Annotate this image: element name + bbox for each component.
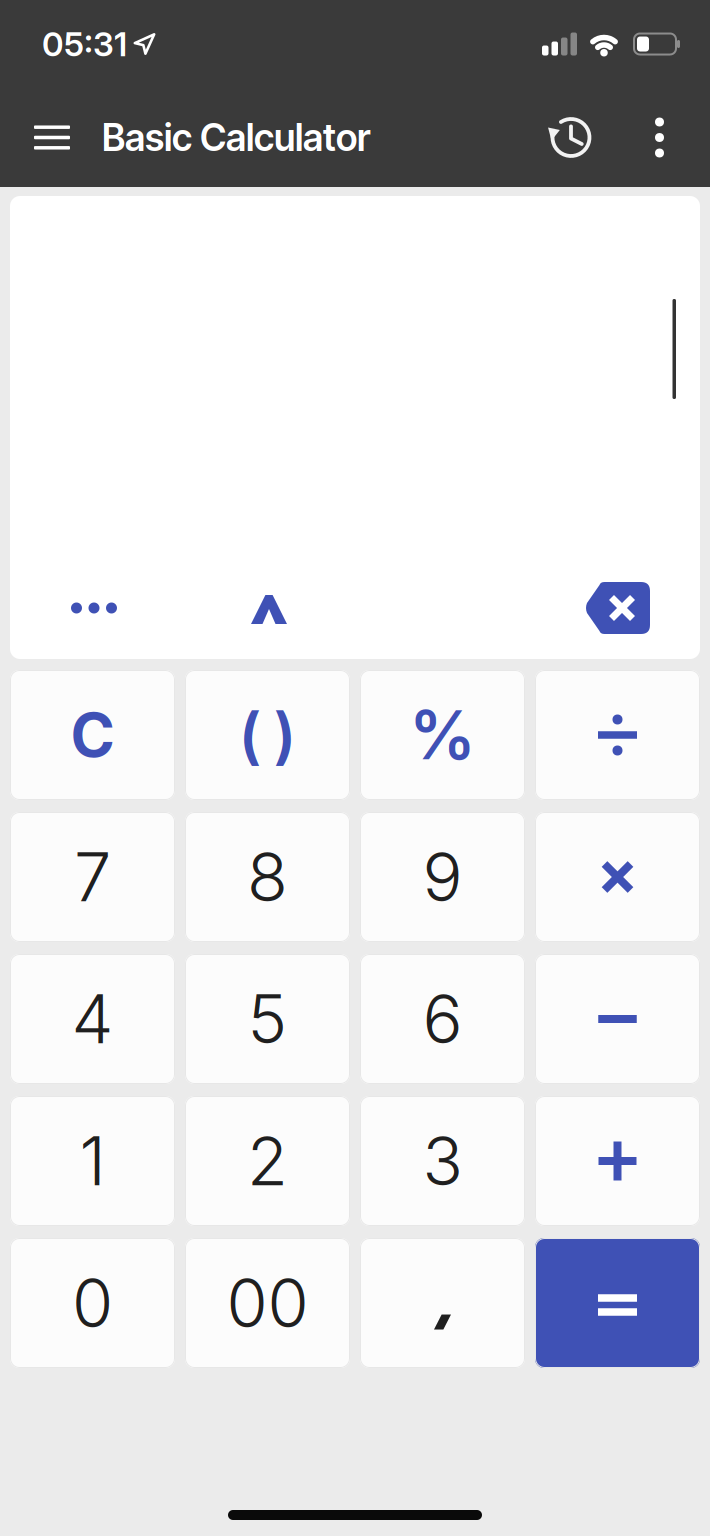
button[interactable]: Backspace	[585, 582, 650, 634]
staticText: 6	[422, 980, 462, 1058]
button[interactable]: 00	[185, 1238, 350, 1368]
button[interactable]: 3	[360, 1096, 525, 1226]
button[interactable]: Parentheses	[185, 670, 350, 800]
button[interactable]: Plus	[535, 1096, 700, 1226]
staticText: 3	[422, 1122, 462, 1200]
staticText: C	[70, 700, 114, 770]
button[interactable]: 5	[185, 954, 350, 1084]
button[interactable]: 1	[10, 1096, 175, 1226]
staticText: 2	[247, 1122, 288, 1200]
button[interactable]: Multiply	[535, 812, 700, 942]
staticText: 4	[71, 980, 113, 1058]
staticText: %	[409, 696, 476, 774]
staticText: Basic Calculator	[102, 115, 370, 160]
staticText: 00	[226, 1264, 308, 1342]
staticText: 9	[422, 838, 462, 916]
button[interactable]: Open menu	[24, 115, 80, 160]
button[interactable]: 0	[10, 1238, 175, 1368]
staticText: 1	[79, 1122, 105, 1200]
button[interactable]: 2	[185, 1096, 350, 1226]
button[interactable]: More options	[592, 117, 668, 157]
button[interactable]: Divide	[535, 670, 700, 800]
staticText: 7	[74, 838, 111, 916]
button[interactable]: More functions	[71, 602, 117, 613]
staticText: )	[273, 699, 296, 771]
button[interactable]: Exponent	[251, 593, 287, 622]
staticText: 0	[72, 1264, 113, 1342]
staticText: (	[238, 699, 261, 771]
button[interactable]: 7	[10, 812, 175, 942]
button[interactable]: Clear	[10, 670, 175, 800]
staticText: 8	[247, 838, 288, 916]
button[interactable]: Minus	[535, 954, 700, 1084]
button[interactable]: 8	[185, 812, 350, 942]
button[interactable]: History	[550, 116, 592, 158]
button[interactable]: Equals	[535, 1238, 700, 1368]
button[interactable]: 4	[10, 954, 175, 1084]
staticText: 05:31	[42, 24, 127, 64]
button[interactable]: 6	[360, 954, 525, 1084]
button[interactable]: Comma	[360, 1238, 525, 1368]
staticText: 5	[247, 980, 287, 1058]
button[interactable]: Percent	[360, 670, 525, 800]
button[interactable]: 9	[360, 812, 525, 942]
